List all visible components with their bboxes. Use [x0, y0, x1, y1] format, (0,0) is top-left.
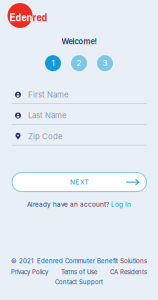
- button[interactable]: Privacy Policy: [11, 268, 48, 276]
- button[interactable]: Contact Support: [55, 278, 103, 286]
- button[interactable]: Terms of Use: [61, 268, 97, 276]
- button[interactable]: Step 3: [97, 55, 113, 71]
- staticText: © 2021 Edenred Commuter Benefit Solution…: [11, 257, 147, 265]
- button[interactable]: NEXT: [12, 173, 146, 192]
- button[interactable]: Log In: [111, 201, 131, 208]
- staticText: Already have an account?: [27, 201, 111, 208]
- button[interactable]: CA Residents: [110, 268, 147, 276]
- button[interactable]: Last Name: [12, 107, 146, 128]
- staticText: Log In: [111, 201, 131, 208]
- staticText: Last Name: [28, 111, 67, 120]
- staticText: Zip Code: [28, 131, 63, 141]
- button[interactable]: First Name: [12, 86, 146, 107]
- staticText: 1: [51, 58, 54, 68]
- button[interactable]: Step 2: [71, 55, 87, 71]
- staticText: CA Residents: [110, 268, 147, 276]
- staticText: red: [32, 9, 47, 25]
- staticText: NEXT: [70, 178, 88, 186]
- staticText: First Name: [28, 90, 69, 99]
- staticText: Terms of Use: [61, 268, 97, 276]
- staticText: Eden: [9, 9, 32, 25]
- staticText: 2: [76, 58, 81, 68]
- staticText: Welcome!: [61, 37, 96, 46]
- button[interactable]: Zip Code: [12, 128, 146, 149]
- staticText: Contact Support: [55, 278, 103, 286]
- button[interactable]: Step 1: [45, 55, 61, 71]
- staticText: Privacy Policy: [11, 268, 48, 276]
- staticText: 3: [102, 58, 107, 68]
